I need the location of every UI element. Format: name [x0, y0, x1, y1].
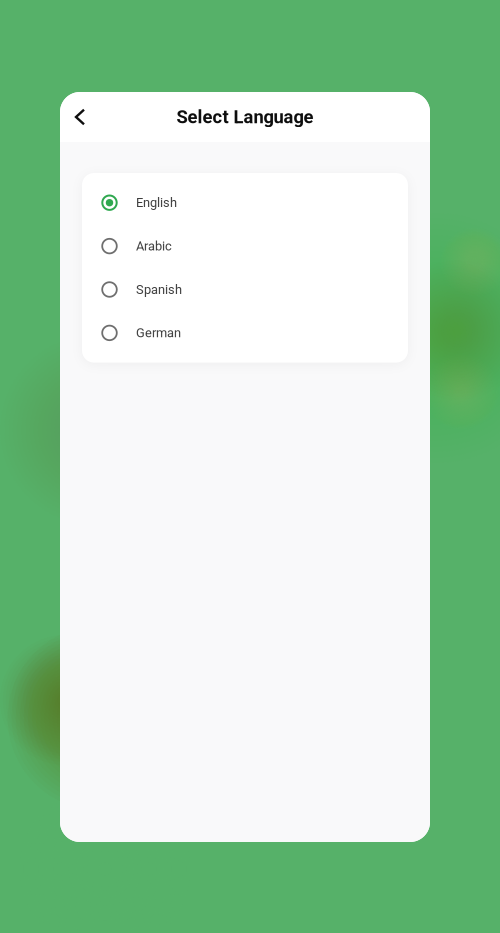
button[interactable]: Spanish	[82, 268, 408, 311]
staticText: English	[136, 195, 177, 210]
staticText: Spanish	[136, 282, 182, 297]
staticText: German	[136, 325, 181, 340]
staticText: Arabic	[136, 239, 172, 254]
button[interactable]: English	[82, 181, 408, 224]
button[interactable]: Arabic	[82, 224, 408, 268]
button[interactable]: Back	[65, 100, 95, 134]
button[interactable]: German	[82, 311, 408, 355]
staticText: Select Language	[176, 106, 313, 128]
